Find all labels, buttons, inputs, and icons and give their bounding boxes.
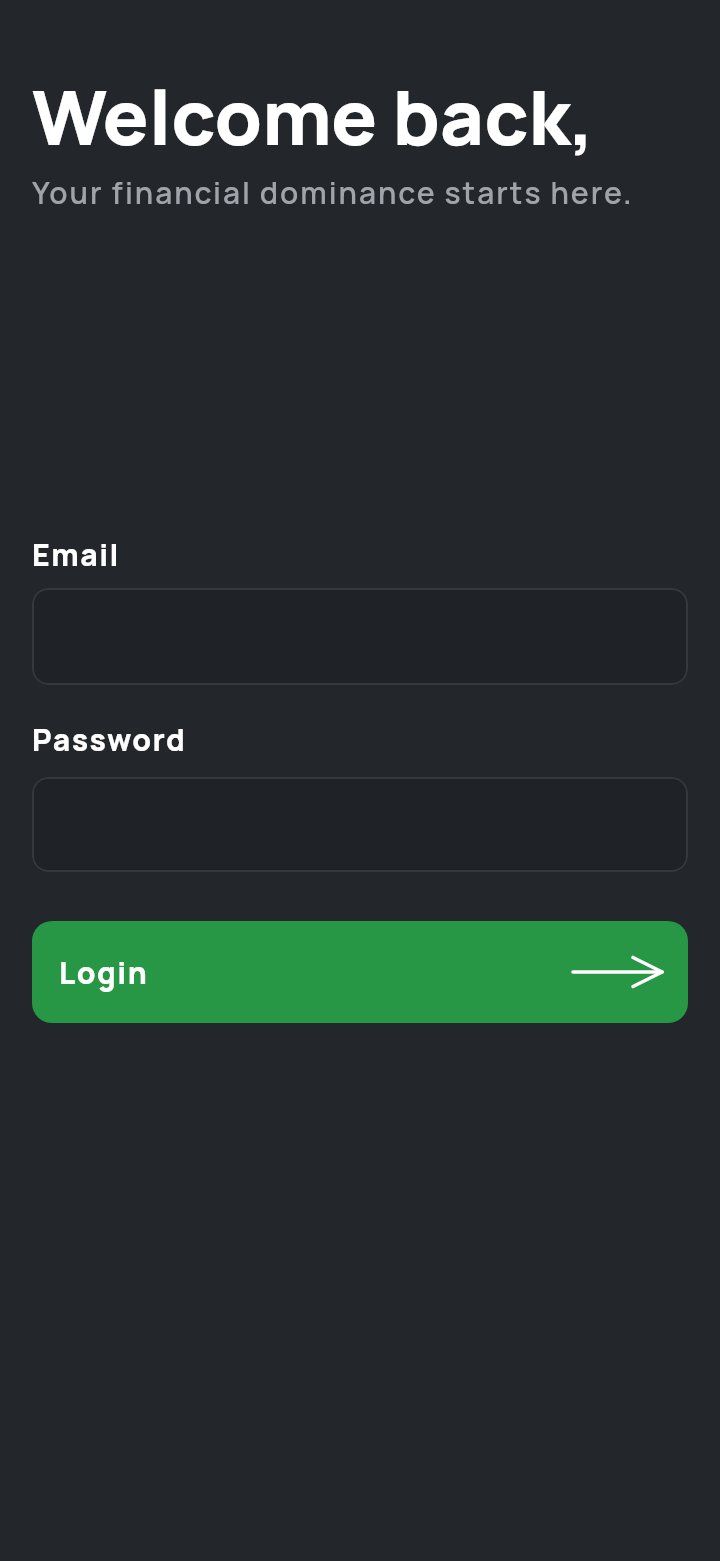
button[interactable] <box>32 588 688 685</box>
staticText: Email <box>32 534 120 575</box>
staticText: Your financial dominance starts here. <box>32 172 634 213</box>
button[interactable] <box>32 777 688 872</box>
staticText: Welcome back, <box>32 64 595 168</box>
button[interactable]: Login <box>32 921 688 1023</box>
staticText: Password <box>32 719 187 760</box>
staticText: Login <box>59 952 149 993</box>
